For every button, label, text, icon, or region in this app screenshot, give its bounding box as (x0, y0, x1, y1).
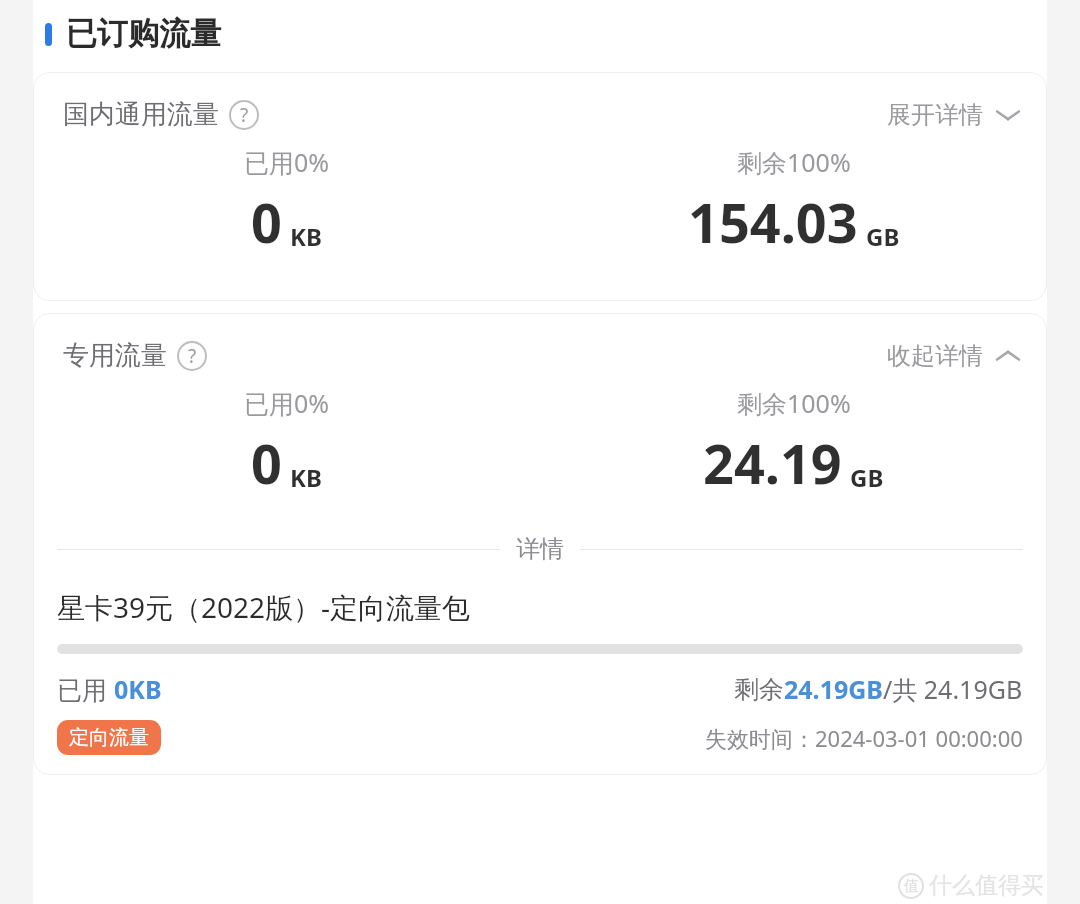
staticText: KB (290, 220, 322, 253)
staticText: 剩余100% (737, 386, 851, 420)
staticText: 154.03 (688, 185, 858, 259)
button[interactable]: 定向流量 (57, 720, 161, 755)
staticText: 已用0% (244, 145, 330, 179)
staticText: 国内通用流量 (63, 98, 219, 131)
button[interactable]: 专用流量 (33, 313, 1047, 378)
staticText: 收起详情 (887, 341, 983, 371)
staticText: /共 24.19GB (883, 672, 1023, 706)
staticText: 失效时间：2024-03-01 00:00:00 (705, 723, 1023, 753)
staticText: 0 (251, 426, 282, 500)
staticText: 星卡39元（2022版）-定向流量包 (57, 588, 471, 626)
staticText: 专用流量 (63, 339, 167, 372)
staticText: 展开详情 (887, 100, 983, 130)
staticText: GB (850, 461, 884, 494)
staticText: ? (188, 343, 197, 369)
staticText: 24.19GB (784, 672, 883, 706)
staticText: 什么值得买 (929, 871, 1044, 900)
staticText: GB (866, 220, 900, 253)
staticText: 已用0% (244, 386, 330, 420)
button[interactable]: 国内通用流量 (33, 72, 1047, 137)
staticText: ? (240, 102, 249, 128)
staticText: 定向流量 (69, 725, 149, 750)
staticText: 已用 (57, 672, 114, 706)
staticText: 0KB (114, 672, 162, 706)
staticText: 值 (904, 877, 919, 896)
staticText: 剩余100% (737, 145, 851, 179)
staticText: KB (290, 461, 322, 494)
staticText: 剩余 (734, 674, 784, 705)
staticText: 0 (251, 185, 282, 259)
staticText: 已订购流量 (66, 14, 221, 53)
staticText: 详情 (516, 534, 564, 564)
staticText: 24.19 (703, 426, 842, 500)
